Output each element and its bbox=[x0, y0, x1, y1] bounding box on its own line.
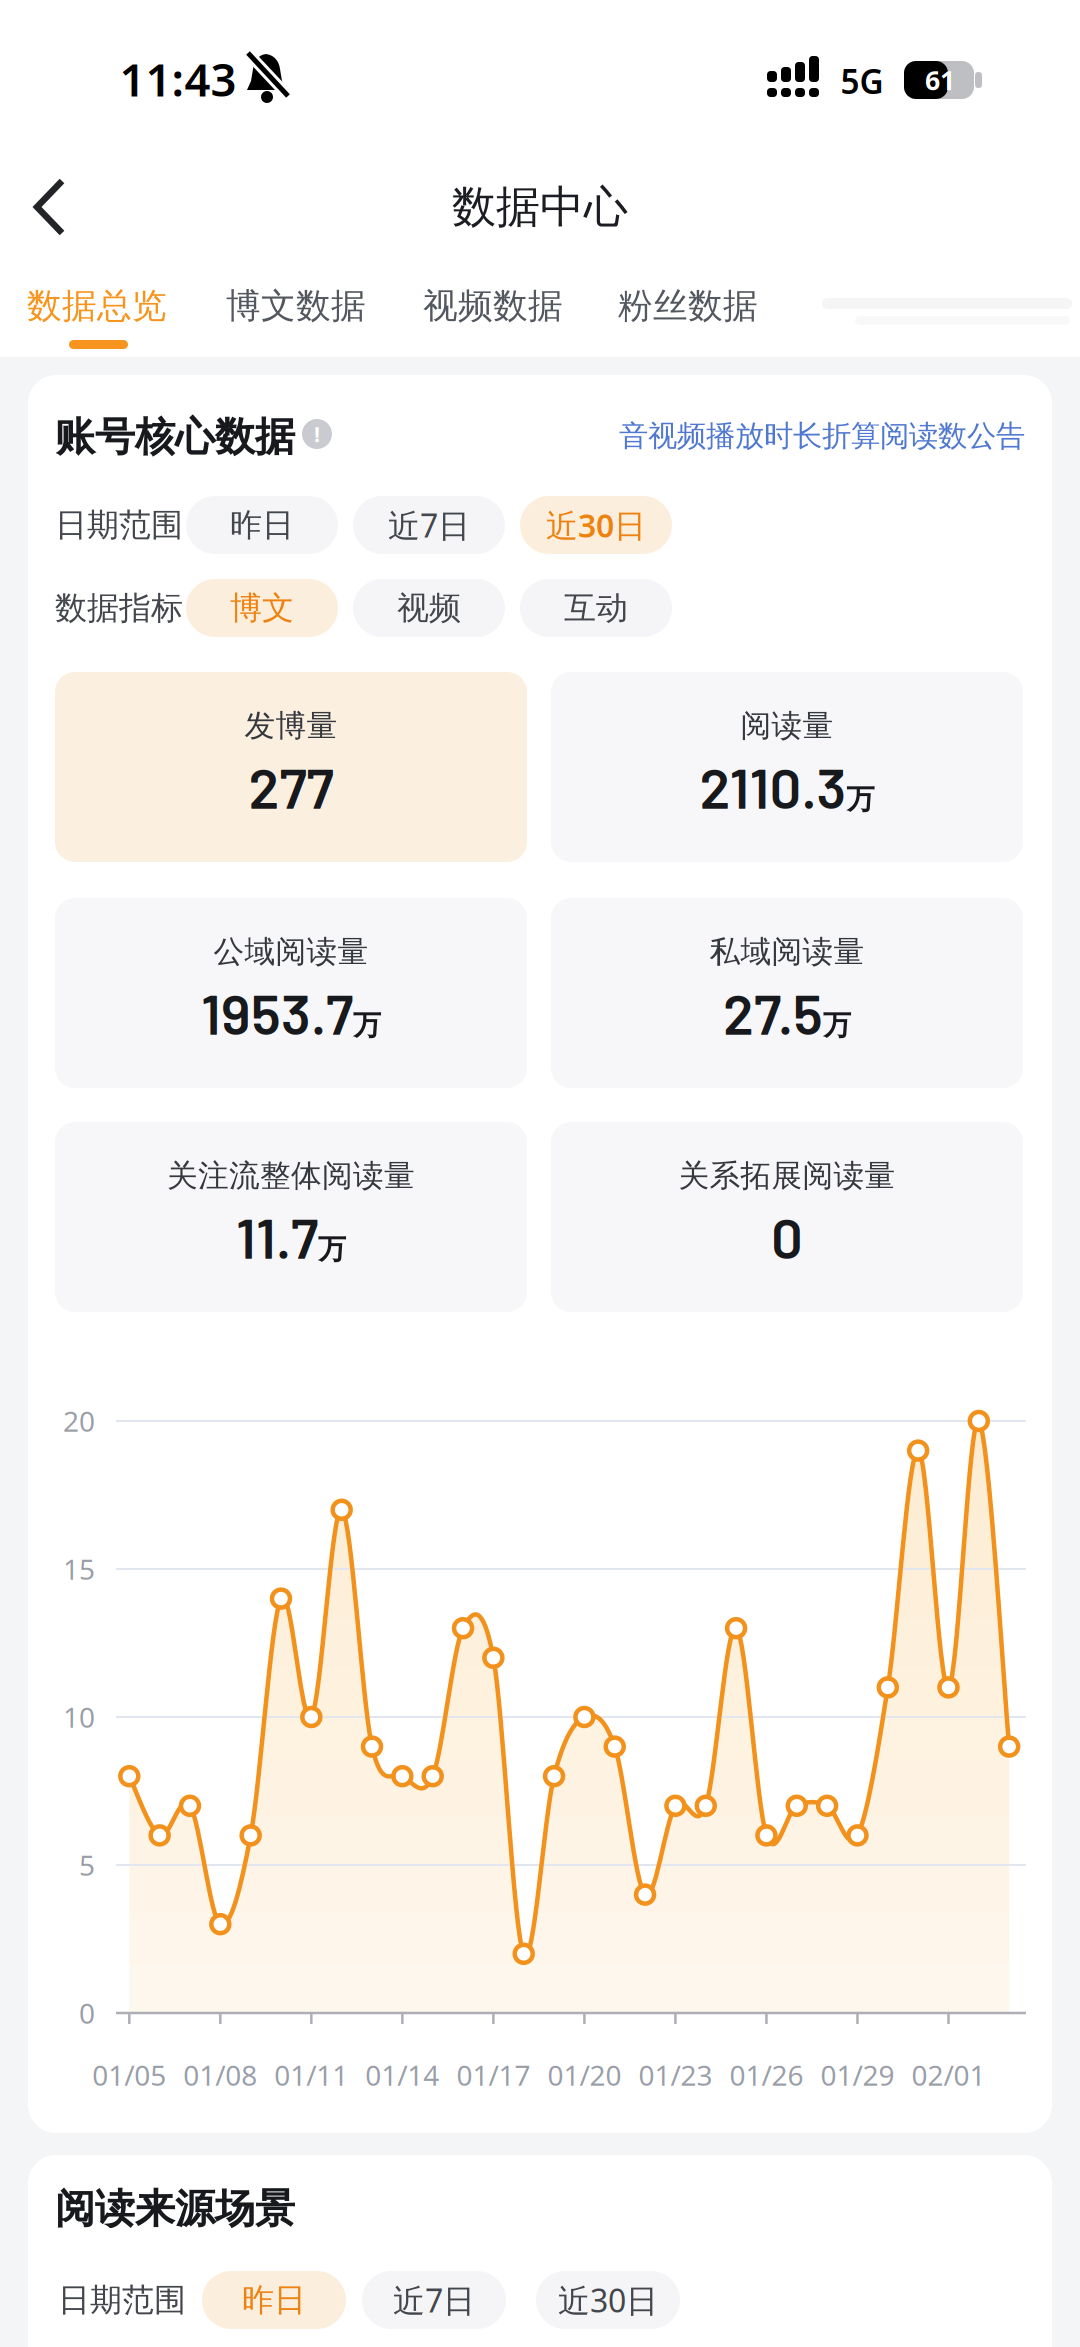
staticText: 61 bbox=[925, 62, 955, 98]
staticText: 互动 bbox=[564, 588, 628, 628]
button[interactable]: 视频 bbox=[353, 579, 505, 637]
staticText: 01/20 bbox=[547, 2056, 621, 2094]
button[interactable]: 阅读量 bbox=[551, 672, 1023, 862]
staticText: 01/17 bbox=[456, 2056, 530, 2094]
staticText: 昨日 bbox=[242, 2280, 306, 2320]
staticText: 私域阅读量 bbox=[709, 933, 864, 971]
staticText: 5G bbox=[840, 59, 883, 103]
staticText: ! bbox=[314, 420, 320, 448]
staticText: 数据指标 bbox=[55, 588, 183, 628]
button[interactable]: 视频数据 bbox=[0, 0, 1080, 2347]
button[interactable]: 粉丝数据 bbox=[0, 0, 1080, 2347]
staticText: 日期范围 bbox=[55, 505, 183, 545]
staticText: 01/11 bbox=[274, 2056, 348, 2094]
staticText: 277 bbox=[248, 754, 333, 819]
staticText: 10 bbox=[63, 1698, 95, 1736]
staticText: 数据中心 bbox=[452, 180, 628, 234]
button[interactable]: 近30日 bbox=[536, 2271, 680, 2329]
staticText: 5 bbox=[79, 1846, 95, 1884]
staticText: 0 bbox=[771, 1204, 803, 1269]
staticText: 博文数据 bbox=[226, 285, 366, 327]
staticText: 02/01 bbox=[911, 2056, 985, 2094]
staticText: 近7日 bbox=[388, 504, 470, 546]
button[interactable]: 公域阅读量 bbox=[55, 898, 527, 1088]
staticText: 近30日 bbox=[546, 504, 646, 546]
staticText: 音视频播放时长折算阅读数公告 bbox=[619, 418, 1025, 454]
staticText: 01/23 bbox=[638, 2056, 712, 2094]
staticText: 公域阅读量 bbox=[213, 933, 368, 971]
button[interactable]: 近7日 bbox=[362, 2271, 506, 2329]
staticText: 发博量 bbox=[244, 707, 337, 745]
staticText: 20 bbox=[63, 1402, 95, 1440]
staticText: 昨日 bbox=[230, 505, 294, 545]
staticText: 阅读量 bbox=[740, 707, 833, 745]
button[interactable]: 近7日 bbox=[353, 496, 505, 554]
button[interactable]: 昨日 bbox=[186, 496, 338, 554]
button[interactable]: 昨日 bbox=[202, 2271, 346, 2329]
staticText: 阅读来源场景 bbox=[55, 2184, 295, 2233]
staticText: 视频数据 bbox=[423, 285, 563, 327]
staticText: 近30日 bbox=[558, 2279, 658, 2321]
staticText: 15 bbox=[63, 1550, 95, 1588]
staticText: 关系拓展阅读量 bbox=[678, 1157, 895, 1195]
staticText: 账号核心数据 bbox=[55, 412, 295, 461]
button[interactable]: 私域阅读量 bbox=[551, 898, 1023, 1088]
staticText: 数据总览 bbox=[27, 285, 167, 327]
staticText: 粉丝数据 bbox=[618, 285, 758, 327]
staticText: 01/05 bbox=[92, 2056, 166, 2094]
button[interactable]: 博文 bbox=[186, 579, 338, 637]
button[interactable]: 关注流整体阅读量 bbox=[55, 1122, 527, 1312]
button[interactable]: 近30日 bbox=[520, 496, 672, 554]
staticText: 0 bbox=[79, 1994, 95, 2032]
button[interactable]: 数据总览 bbox=[0, 0, 1080, 2347]
staticText: 11.7万 bbox=[236, 1204, 346, 1269]
staticText: 2110.3万 bbox=[699, 754, 874, 819]
button[interactable]: 音视频播放时长折算阅读数公告 bbox=[555, 416, 1025, 456]
staticText: 视频 bbox=[397, 588, 461, 628]
staticText: 27.5万 bbox=[723, 980, 851, 1045]
staticText: 1953.7万 bbox=[201, 980, 381, 1045]
staticText: 博文 bbox=[230, 588, 294, 628]
button[interactable]: 说明 bbox=[302, 419, 332, 449]
button[interactable]: 关系拓展阅读量 bbox=[551, 1122, 1023, 1312]
staticText: 01/29 bbox=[820, 2056, 894, 2094]
staticText: 近7日 bbox=[393, 2279, 475, 2321]
button[interactable]: 发博量 bbox=[55, 672, 527, 862]
staticText: 关注流整体阅读量 bbox=[167, 1157, 415, 1195]
staticText: 01/26 bbox=[729, 2056, 803, 2094]
button[interactable]: 博文数据 bbox=[0, 0, 1080, 2347]
staticText: 11:43 bbox=[119, 49, 236, 109]
button[interactable]: 互动 bbox=[520, 579, 672, 637]
staticText: 日期范围 bbox=[58, 2280, 186, 2320]
staticText: 01/08 bbox=[183, 2056, 257, 2094]
staticText: 01/14 bbox=[365, 2056, 439, 2094]
